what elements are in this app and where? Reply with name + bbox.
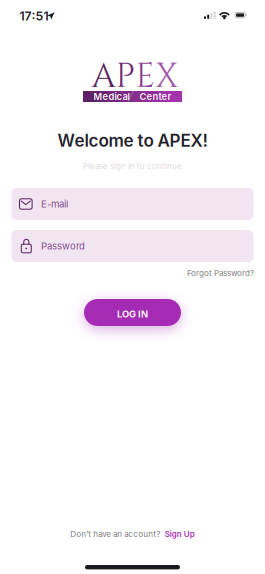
staticText: E — [135, 54, 155, 99]
staticText: Don't have an account? — [70, 529, 160, 539]
staticText: X — [155, 54, 177, 99]
staticText: 17:51 — [20, 9, 49, 23]
staticText: Forgot Password? — [187, 268, 254, 278]
staticText: E-mail — [41, 198, 68, 210]
staticText: Medical Center — [93, 91, 171, 102]
staticText: Password — [41, 240, 85, 252]
staticText: P — [115, 54, 135, 99]
staticText: Sign Up — [165, 529, 195, 539]
staticText: Please sign in to continue — [83, 161, 182, 171]
staticText: A — [91, 54, 115, 99]
button[interactable]: LOG IN — [84, 299, 181, 326]
staticText: Welcome to APEX! — [57, 130, 207, 151]
button[interactable]: Sign Up — [165, 529, 195, 539]
staticText: LOG IN — [117, 308, 148, 320]
button[interactable]: E-mail — [11, 188, 253, 220]
button[interactable]: Password — [11, 230, 253, 262]
button[interactable]: Forgot Password? — [187, 268, 254, 278]
